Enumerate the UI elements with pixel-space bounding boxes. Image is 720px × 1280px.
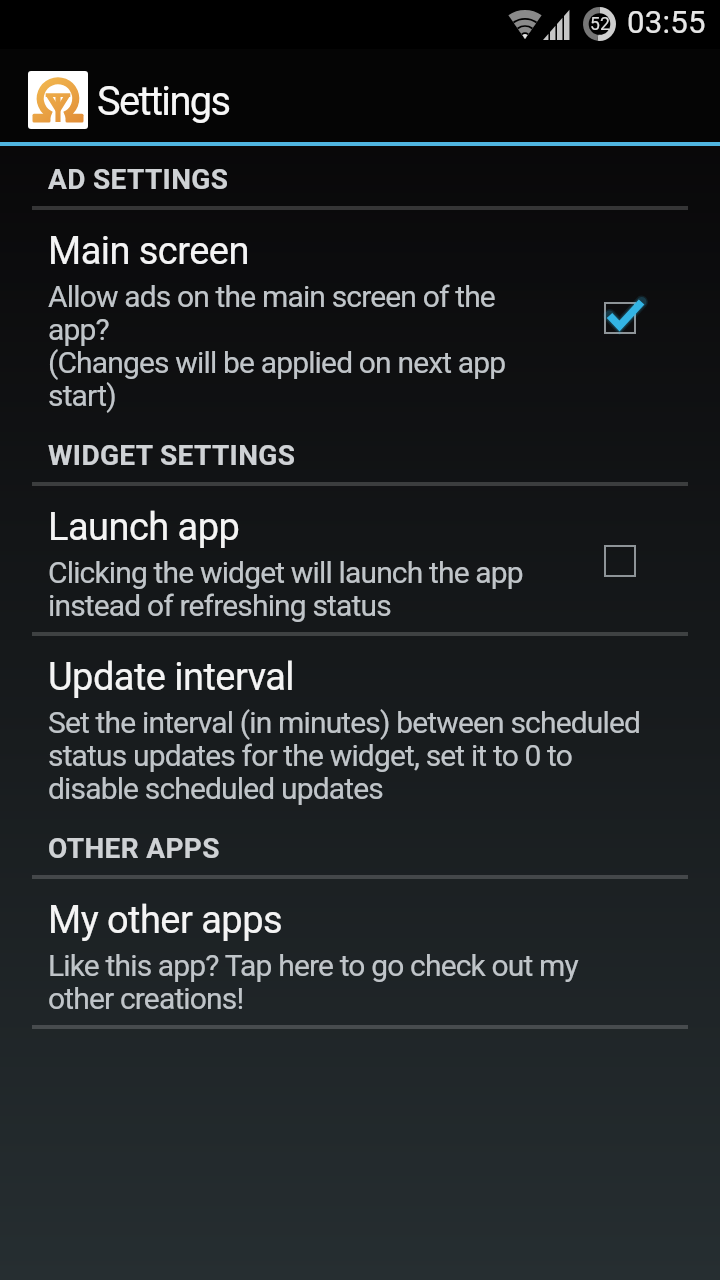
staticText: Set the interval (in minutes) between sc… — [48, 705, 646, 806]
button[interactable]: My other apps — [0, 879, 720, 1025]
staticText: My other apps — [48, 898, 283, 943]
staticText: Clicking the widget will launch the app … — [48, 555, 542, 623]
staticText: Update interval — [48, 655, 295, 700]
button[interactable]: Launch app — [580, 521, 660, 601]
staticText: Launch app — [48, 505, 240, 550]
staticText: WIDGET SETTINGS — [48, 439, 296, 472]
staticText: Like this app? Tap here to go check out … — [48, 948, 646, 1016]
button[interactable]: Launch app — [0, 486, 720, 632]
other: Battery 52 percent — [583, 7, 616, 41]
other: Mobile signal — [543, 8, 571, 40]
staticText: Main screen — [48, 229, 249, 274]
button[interactable]: Main screen — [580, 278, 660, 358]
staticText: 03:55 — [627, 4, 706, 41]
button[interactable]: Update interval — [0, 636, 720, 815]
staticText: Allow ads on the main screen of the app?… — [48, 279, 542, 413]
staticText: OTHER APPS — [48, 832, 220, 865]
staticText: AD SETTINGS — [48, 163, 229, 196]
other: Wi-Fi — [508, 10, 542, 39]
staticText: 52 — [590, 14, 610, 35]
button[interactable]: Main screen — [0, 210, 720, 422]
staticText: Settings — [97, 78, 230, 125]
